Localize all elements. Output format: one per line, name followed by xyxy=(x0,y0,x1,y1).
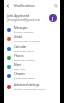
staticText: Messages xyxy=(14,26,28,30)
button[interactable]: Meet xyxy=(4,62,60,71)
staticText: Memories, sharing xyxy=(14,58,36,61)
staticText: Calls, chat xyxy=(14,67,26,70)
staticText: Gmail xyxy=(14,35,23,39)
staticText: Downloads, media xyxy=(14,76,35,79)
button[interactable]: Chrome xyxy=(4,71,60,80)
staticText: Notifications xyxy=(14,3,35,8)
button[interactable]: Messages xyxy=(4,25,60,34)
staticText: johnappleseed@gmail.com xyxy=(7,18,41,22)
staticText: Bubbles, notification history xyxy=(14,87,46,90)
staticText: Chrome xyxy=(14,72,25,76)
button[interactable]: Back xyxy=(4,2,12,10)
staticText: Reminders, alerts xyxy=(14,49,34,52)
staticText: Photos xyxy=(14,54,24,58)
staticText: Sounds, pop on screen xyxy=(14,39,40,42)
staticText: Calendar xyxy=(14,45,27,49)
button[interactable]: Gmail xyxy=(4,34,60,43)
staticText: John Appleseed xyxy=(7,14,30,18)
staticText: Advanced settings xyxy=(14,83,40,87)
button[interactable]: Search xyxy=(52,2,60,10)
staticText: J xyxy=(52,16,54,21)
button[interactable]: Advanced settings xyxy=(4,82,60,91)
button[interactable]: John Appleseed xyxy=(4,11,60,24)
staticText: Sounds, vibration xyxy=(14,30,34,33)
button[interactable]: Calendar xyxy=(4,44,60,53)
staticText: Meet xyxy=(14,63,22,67)
button[interactable]: Photos xyxy=(4,53,60,62)
